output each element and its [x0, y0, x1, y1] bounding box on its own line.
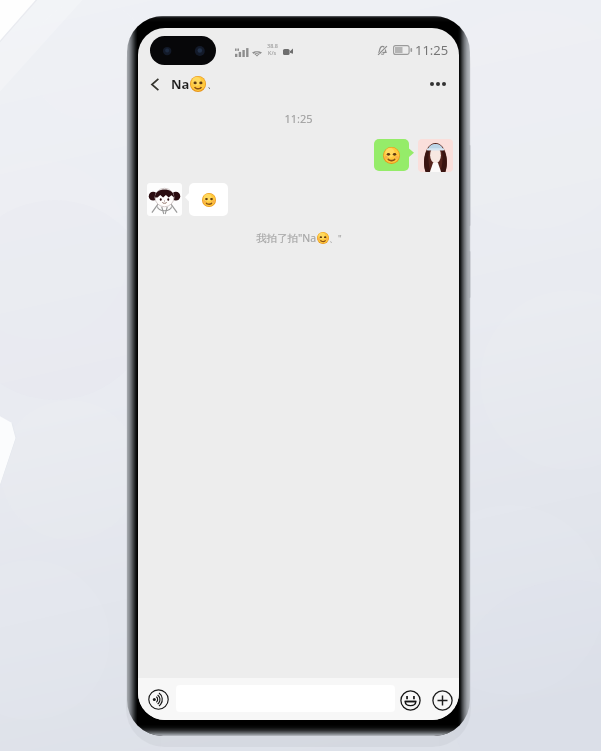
- button[interactable]: More options: [423, 69, 453, 99]
- button[interactable]: More: [431, 689, 453, 711]
- staticText: 、": [329, 232, 342, 244]
- staticText: Na: [171, 75, 190, 93]
- button[interactable]: Back: [142, 71, 168, 97]
- button[interactable]: Emoji: [399, 689, 421, 711]
- staticText: 38.8: [267, 42, 278, 49]
- staticText: K/s: [268, 49, 277, 56]
- button[interactable]: My avatar: [147, 183, 182, 216]
- button[interactable]: Voice input: [147, 688, 169, 710]
- staticText: 我拍了拍"Na: [256, 231, 317, 245]
- button[interactable]: Contact avatar: [418, 139, 453, 172]
- staticText: 11:25: [415, 41, 449, 59]
- button[interactable]: [189, 183, 228, 216]
- staticText: 11:25: [138, 111, 459, 126]
- staticText: 、: [207, 78, 217, 91]
- button[interactable]: [374, 139, 409, 171]
